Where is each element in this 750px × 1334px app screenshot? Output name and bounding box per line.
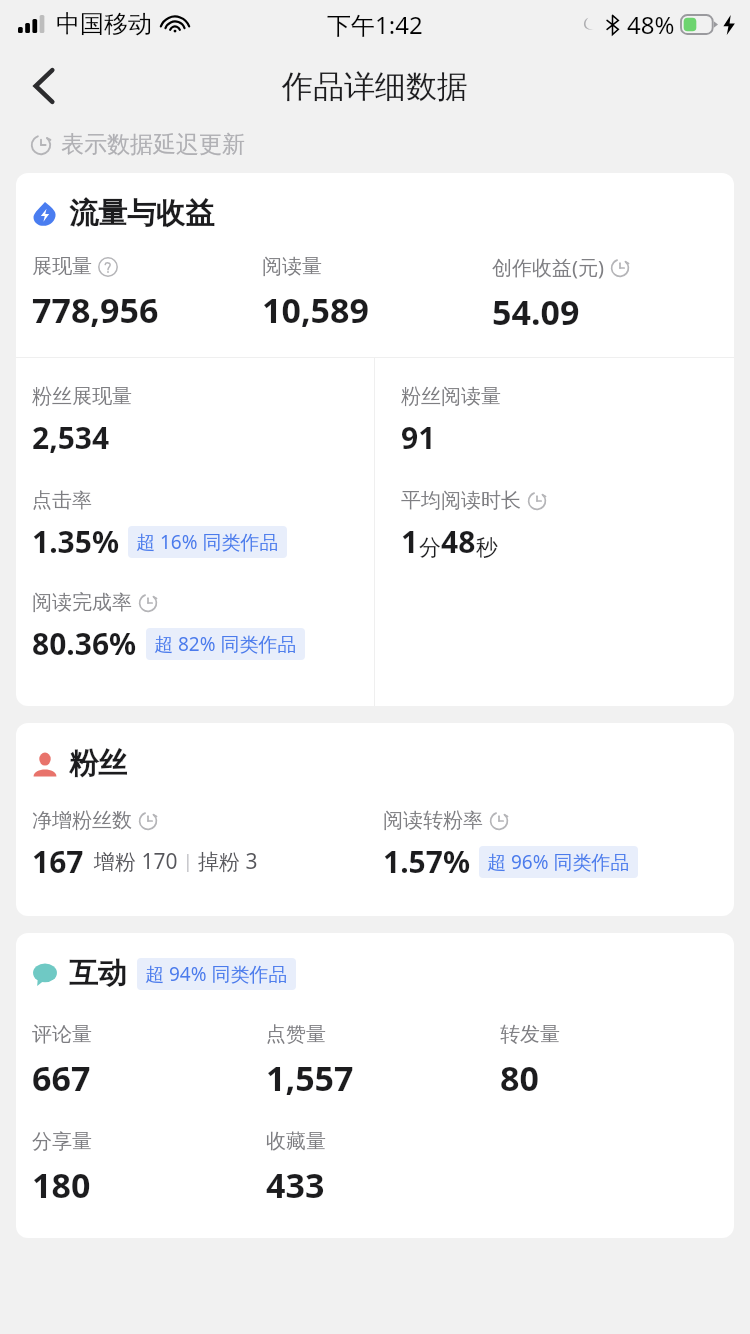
staticText: 1.35% — [32, 521, 119, 562]
button[interactable]: 超 94% 同类作品 — [145, 961, 288, 987]
staticText: 粉丝 — [69, 745, 127, 782]
staticText: 评论量 — [32, 1022, 92, 1047]
staticText: 点赞量 — [266, 1022, 326, 1047]
staticText: 粉丝阅读量 — [401, 384, 501, 409]
staticText: 1.57% — [383, 841, 470, 882]
staticText: 1,557 — [266, 1055, 354, 1101]
staticText: 阅读转粉率 — [383, 808, 483, 833]
staticText: 粉丝展现量 — [32, 384, 132, 409]
button[interactable]: Back — [16, 58, 72, 114]
staticText: 48 — [441, 521, 476, 562]
staticText: 净增粉丝数 — [32, 808, 132, 833]
button[interactable]: 超 96% 同类作品 — [487, 849, 630, 875]
staticText: 超 16% 同类作品 — [136, 529, 279, 555]
staticText: 转发量 — [500, 1022, 560, 1047]
staticText: 2,534 — [32, 417, 110, 458]
staticText: 91 — [401, 417, 436, 458]
staticText: 分 — [419, 534, 441, 562]
staticText: 掉粉 3 — [198, 847, 258, 876]
staticText: 展现量 — [32, 254, 92, 279]
staticText: 收藏量 — [266, 1129, 326, 1154]
button[interactable]: 超 16% 同类作品 — [136, 529, 279, 555]
staticText: 超 96% 同类作品 — [487, 849, 630, 875]
staticText: 180 — [32, 1162, 91, 1208]
button[interactable]: 超 82% 同类作品 — [154, 631, 297, 657]
staticText: 433 — [266, 1162, 325, 1208]
staticText: | — [178, 849, 198, 874]
staticText: 秒 — [476, 534, 498, 562]
staticText: 48% — [627, 8, 675, 41]
staticText: 下午1:42 — [327, 8, 423, 41]
staticText: 80.36% — [32, 623, 137, 664]
staticText: 流量与收益 — [69, 195, 214, 232]
staticText: 667 — [32, 1055, 91, 1101]
staticText: 互动 — [69, 955, 127, 992]
staticText: 增粉 170 — [94, 847, 178, 876]
staticText: 167 — [32, 841, 84, 882]
staticText: 超 94% 同类作品 — [145, 961, 288, 987]
staticText: 80 — [500, 1055, 539, 1101]
staticText: 点击率 — [32, 488, 92, 513]
staticText: 10,589 — [262, 287, 369, 333]
staticText: 1 — [401, 521, 419, 562]
staticText: 中国移动 — [56, 9, 152, 39]
staticText: 超 82% 同类作品 — [154, 631, 297, 657]
staticText: 创作收益(元) — [492, 254, 604, 281]
staticText: 54.09 — [492, 289, 580, 335]
staticText: 表示数据延迟更新 — [61, 130, 245, 159]
staticText: 平均阅读时长 — [401, 488, 521, 513]
staticText: 作品详细数据 — [282, 67, 468, 106]
staticText: 阅读完成率 — [32, 590, 132, 615]
staticText: 分享量 — [32, 1129, 92, 1154]
staticText: 阅读量 — [262, 254, 322, 279]
staticText: 778,956 — [32, 287, 159, 333]
